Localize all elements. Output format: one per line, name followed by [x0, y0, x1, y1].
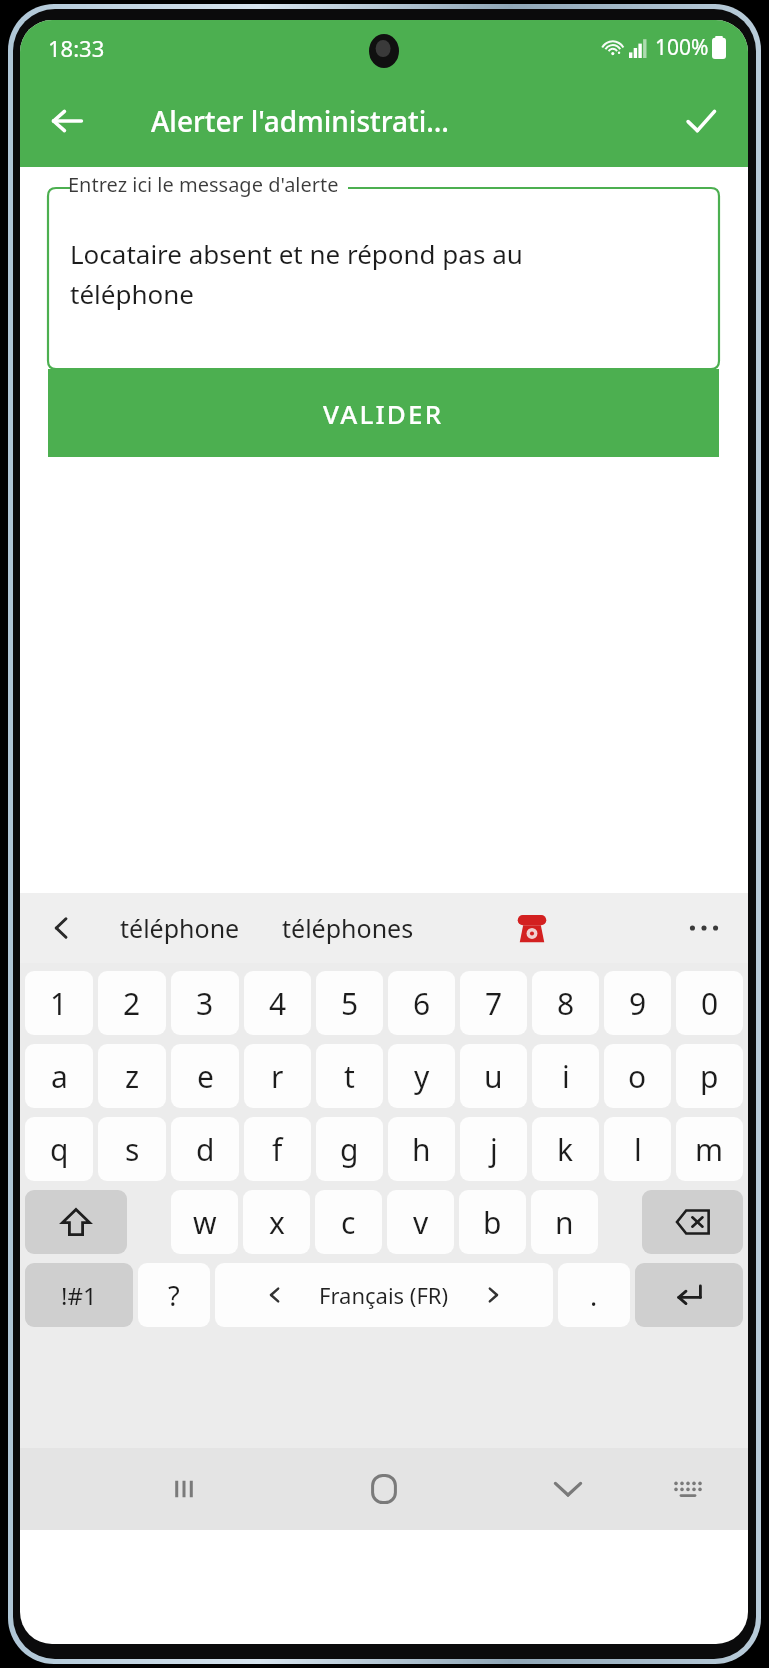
staticText: y [414, 1056, 430, 1097]
staticText: téléphone [120, 911, 240, 945]
staticText: q [50, 1129, 69, 1170]
button[interactable]: Emoji suggestion [506, 902, 558, 954]
button[interactable]: Space, Français (FR) [215, 1263, 553, 1327]
button[interactable]: téléphone [120, 893, 240, 963]
button[interactable]: u [460, 1044, 527, 1108]
button[interactable]: Previous suggestions [38, 904, 86, 952]
button[interactable]: Hide keyboard [538, 1459, 598, 1519]
button[interactable]: k [532, 1117, 599, 1181]
button[interactable]: !#1 [25, 1263, 133, 1327]
button[interactable]: j [460, 1117, 527, 1181]
button[interactable]: Keyboard settings [658, 1459, 718, 1519]
staticText: 7 [485, 983, 503, 1024]
button[interactable]: 6 [388, 971, 455, 1035]
button[interactable]: s [98, 1117, 166, 1181]
staticText: !#1 [61, 1279, 97, 1312]
staticText: x [269, 1202, 285, 1243]
button[interactable]: 1 [25, 971, 93, 1035]
button[interactable]: Entrez ici le message d'alerte [48, 174, 719, 369]
staticText: j [490, 1129, 498, 1170]
staticText: k [557, 1129, 574, 1170]
staticText: o [628, 1056, 647, 1097]
button[interactable]: Home [353, 1458, 415, 1520]
staticText: i [562, 1056, 570, 1097]
button[interactable]: 5 [316, 971, 383, 1035]
button[interactable]: VALIDER [48, 369, 719, 457]
staticText: VALIDER [323, 396, 444, 431]
staticText: n [555, 1202, 574, 1243]
staticText: 1 [50, 983, 68, 1024]
button[interactable]: More options [678, 902, 730, 954]
button[interactable]: l [604, 1117, 671, 1181]
staticText: 4 [269, 983, 287, 1024]
staticText: f [272, 1129, 283, 1170]
staticText: Français (FR) [319, 1280, 449, 1310]
button[interactable]: 9 [604, 971, 671, 1035]
staticText: 100% [655, 33, 709, 62]
button[interactable]: o [604, 1044, 671, 1108]
button[interactable]: r [244, 1044, 311, 1108]
staticText: e [197, 1056, 214, 1097]
staticText: z [125, 1056, 140, 1097]
staticText: Alerter l'administrati… [151, 102, 449, 140]
staticText: Locataire absent et ne répond pas au [70, 236, 523, 271]
button[interactable]: g [316, 1117, 383, 1181]
button[interactable]: Enter [635, 1263, 743, 1327]
button[interactable]: n [531, 1190, 598, 1254]
staticText: l [634, 1129, 642, 1170]
staticText: téléphone [70, 276, 194, 311]
button[interactable]: ? [138, 1263, 210, 1327]
staticText: Entrez ici le message d'alerte [68, 171, 339, 198]
staticText: u [484, 1056, 503, 1097]
button[interactable]: p [676, 1044, 743, 1108]
button[interactable]: Recents [154, 1459, 214, 1519]
button[interactable]: 7 [460, 971, 527, 1035]
button[interactable]: v [387, 1190, 454, 1254]
staticText: 9 [629, 983, 647, 1024]
staticText: r [271, 1056, 284, 1097]
button[interactable]: f [244, 1117, 311, 1181]
button[interactable]: c [315, 1190, 382, 1254]
staticText: 6 [413, 983, 431, 1024]
button[interactable]: . [558, 1263, 630, 1327]
button[interactable]: t [316, 1044, 383, 1108]
button[interactable]: q [25, 1117, 93, 1181]
button[interactable]: d [171, 1117, 239, 1181]
button[interactable]: 8 [532, 971, 599, 1035]
staticText: a [51, 1056, 68, 1097]
staticText: 0 [701, 983, 719, 1024]
staticText: b [483, 1202, 502, 1243]
staticText: h [412, 1129, 431, 1170]
button[interactable]: m [676, 1117, 743, 1181]
staticText: 18:33 [48, 33, 105, 63]
staticText: ? [168, 1277, 180, 1314]
button[interactable]: i [532, 1044, 599, 1108]
button[interactable]: Back [40, 94, 94, 148]
button[interactable]: y [388, 1044, 455, 1108]
button[interactable]: z [98, 1044, 166, 1108]
button[interactable]: b [459, 1190, 526, 1254]
staticText: s [125, 1129, 140, 1170]
button[interactable]: Backspace [642, 1190, 743, 1254]
button[interactable]: Valider [674, 94, 728, 148]
button[interactable]: téléphones [282, 893, 414, 963]
button[interactable]: Shift [25, 1190, 127, 1254]
button[interactable]: 2 [98, 971, 166, 1035]
staticText: téléphones [282, 911, 414, 945]
button[interactable]: e [171, 1044, 239, 1108]
staticText: . [590, 1277, 598, 1314]
button[interactable]: a [25, 1044, 93, 1108]
staticText: g [340, 1129, 359, 1170]
staticText: d [196, 1129, 215, 1170]
staticText: 3 [196, 983, 214, 1024]
staticText: 5 [341, 983, 359, 1024]
staticText: 2 [123, 983, 141, 1024]
button[interactable]: 0 [676, 971, 743, 1035]
button[interactable]: 4 [244, 971, 311, 1035]
staticText: 8 [557, 983, 575, 1024]
staticText: m [695, 1129, 724, 1170]
button[interactable]: w [171, 1190, 238, 1254]
button[interactable]: x [243, 1190, 310, 1254]
button[interactable]: 3 [171, 971, 239, 1035]
button[interactable]: h [388, 1117, 455, 1181]
